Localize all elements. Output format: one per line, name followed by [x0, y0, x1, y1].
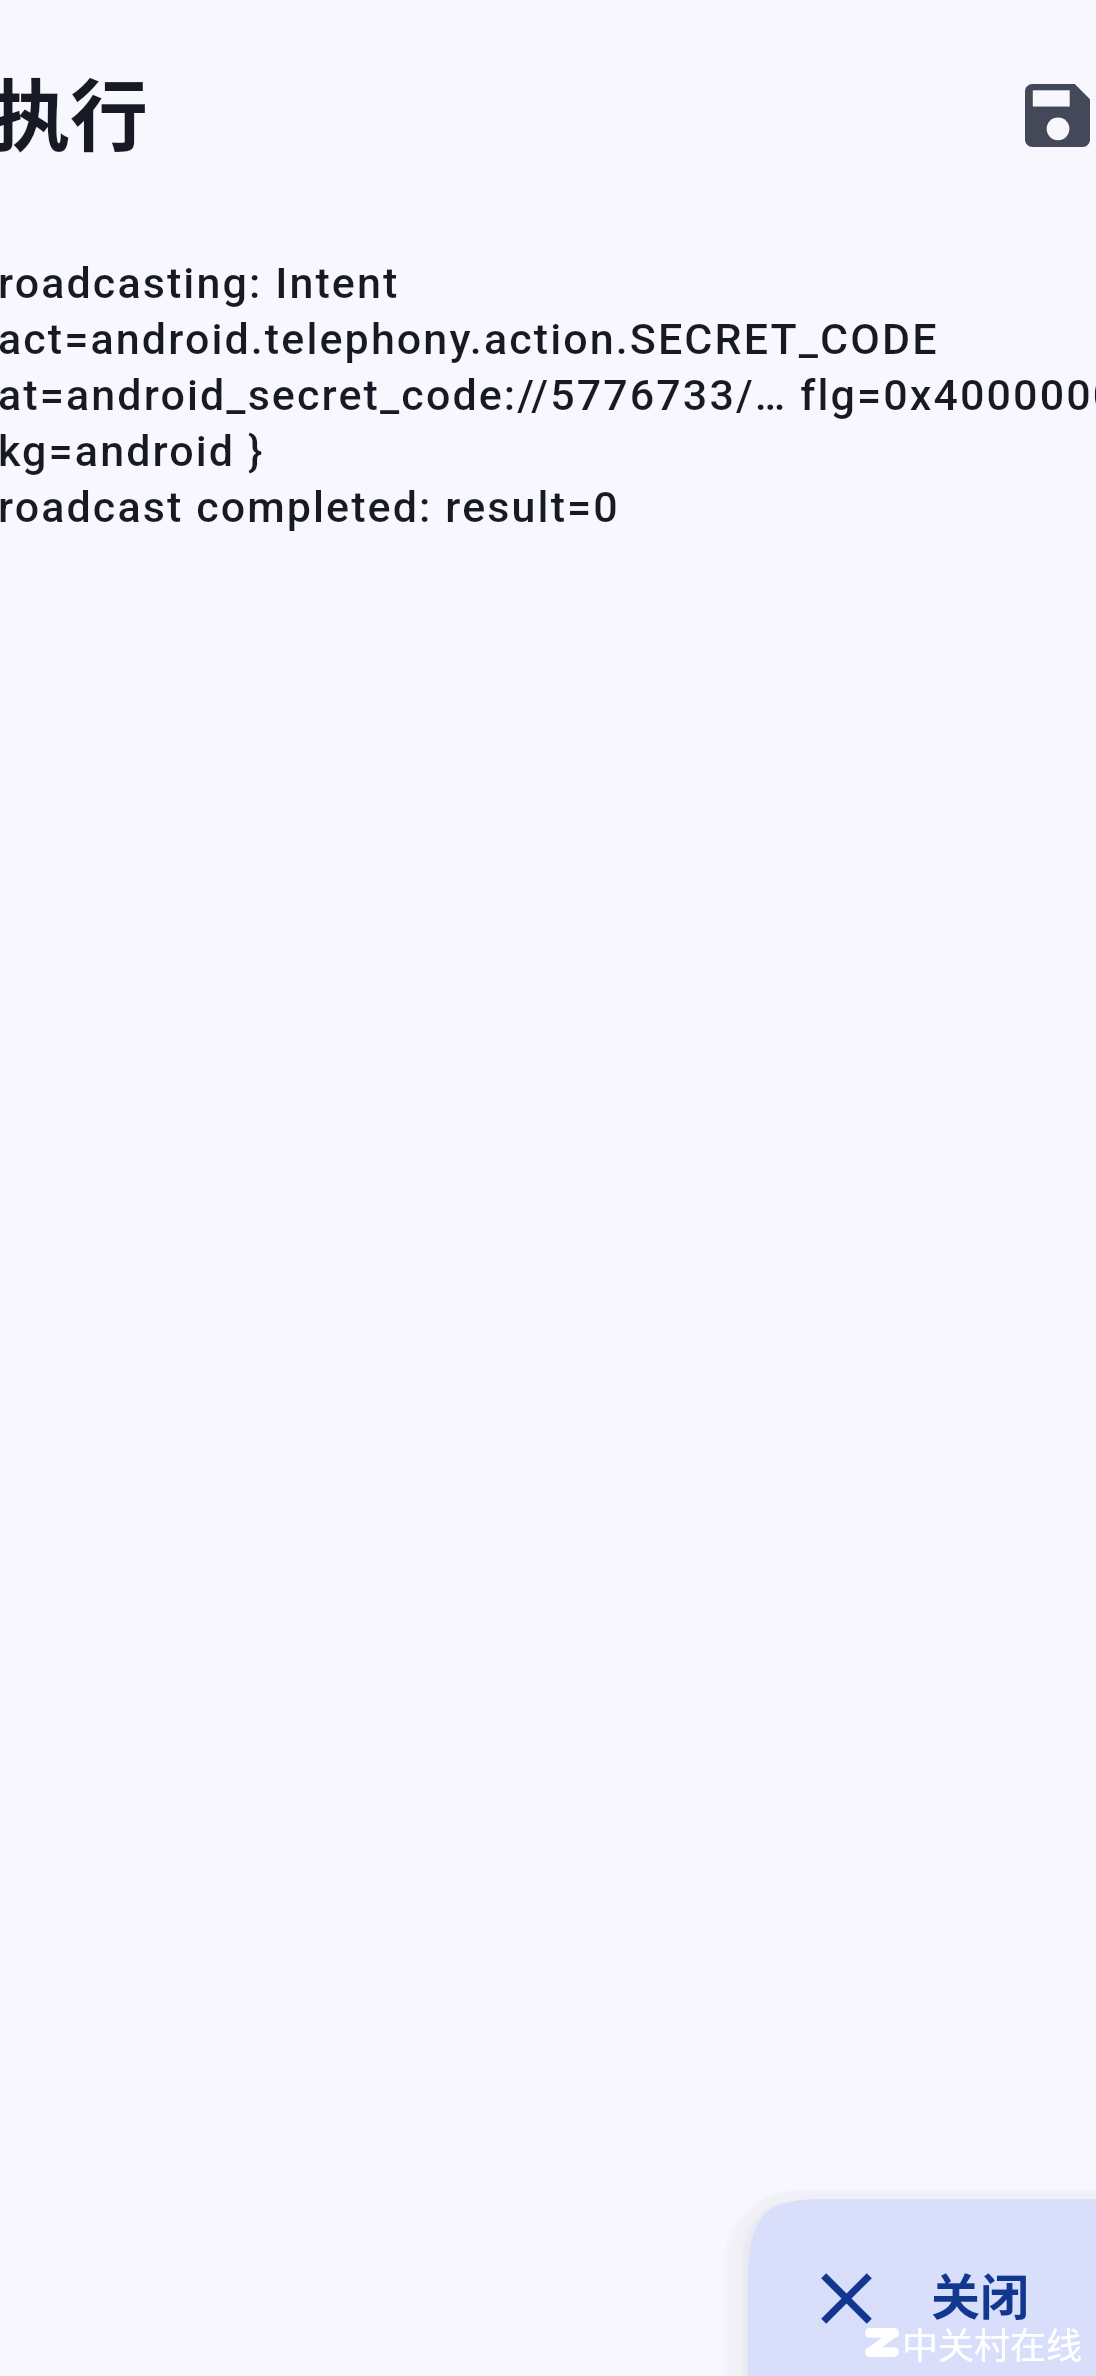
staticText: act=android.telephony.action.SECRET_CODE	[0, 314, 939, 364]
button[interactable]: Save	[1001, 59, 1096, 171]
staticText: 执行	[0, 55, 149, 168]
staticText: at=android_secret_code://5776733/… flg=0…	[0, 370, 1094, 420]
button[interactable]: 关闭	[748, 2199, 1096, 2376]
staticText: roadcast completed: result=0	[0, 482, 620, 532]
staticText: kg=android }	[0, 426, 265, 476]
staticText: roadcasting: Intent	[0, 258, 400, 308]
staticText: 关闭	[931, 2258, 1030, 2329]
staticText: 中关村在线	[902, 2317, 1083, 2369]
